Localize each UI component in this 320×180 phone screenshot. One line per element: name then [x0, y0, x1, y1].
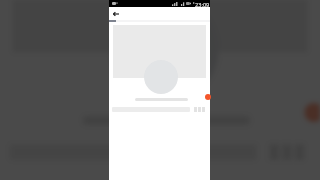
button[interactable]: Back	[113, 11, 119, 17]
button[interactable]: Compose	[304, 103, 320, 122]
button[interactable]: Compose	[205, 94, 211, 100]
staticText: 23:09	[195, 1, 210, 8]
